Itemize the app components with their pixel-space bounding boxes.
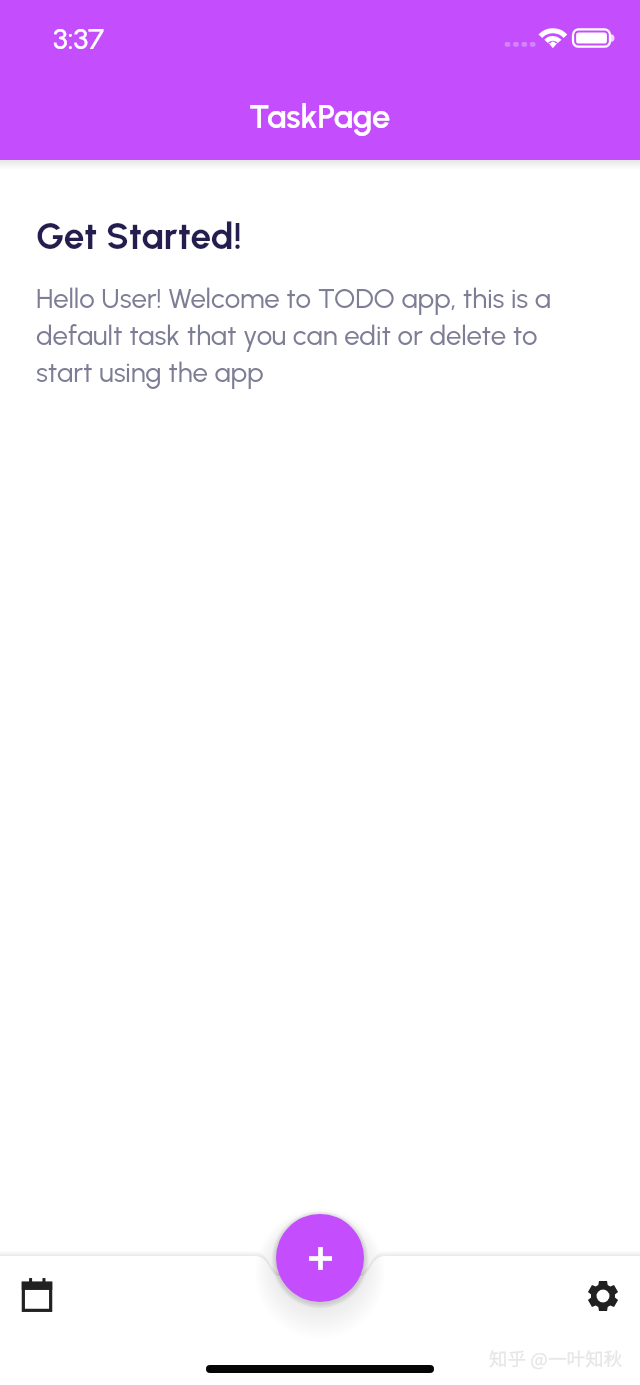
staticText: 知乎 @一叶知秋 <box>489 1344 623 1371</box>
button[interactable]: Settings <box>571 1264 635 1328</box>
staticText: Hello User! Welcome to TODO app, this is… <box>36 279 561 390</box>
button[interactable]: Add task <box>276 1214 364 1302</box>
staticText: TaskPage <box>249 97 391 136</box>
button[interactable]: Calendar <box>5 1263 69 1327</box>
staticText: Get Started! <box>36 214 242 258</box>
staticText: 3:37 <box>53 21 105 57</box>
